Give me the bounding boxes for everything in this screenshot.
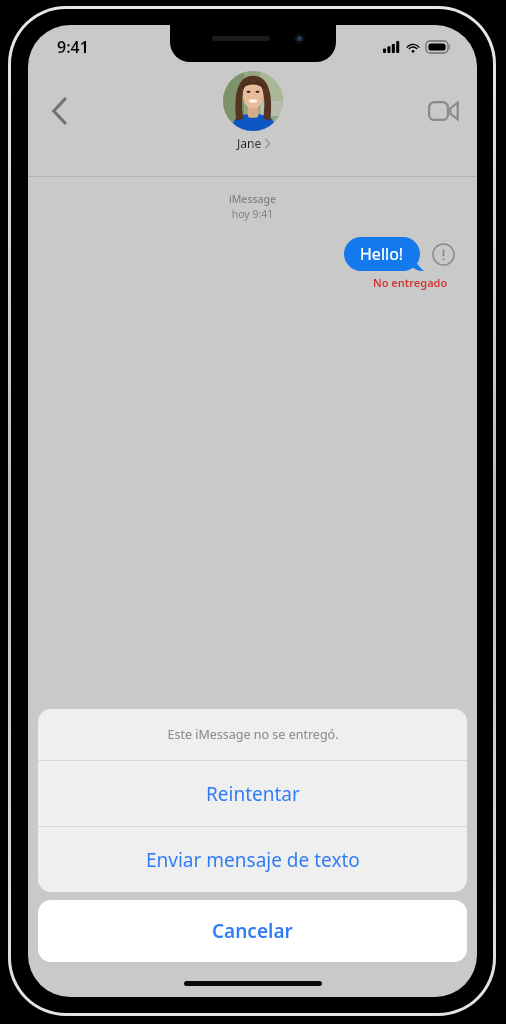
- staticText: Reintentar: [206, 781, 300, 807]
- staticText: iMessage: [28, 192, 477, 206]
- staticText: Cancelar: [212, 918, 293, 944]
- button[interactable]: Back: [36, 87, 84, 135]
- staticText: No entregado: [373, 275, 448, 290]
- button[interactable]: Jane: [223, 71, 283, 151]
- button[interactable]: Not delivered info: [430, 241, 456, 267]
- staticText: Jane: [237, 135, 262, 151]
- button[interactable]: Enviar mensaje de texto: [38, 827, 467, 892]
- button[interactable]: Hello!: [344, 237, 424, 271]
- button[interactable]: Reintentar: [38, 761, 467, 826]
- staticText: Enviar mensaje de texto: [146, 847, 360, 873]
- button[interactable]: FaceTime video call: [419, 87, 467, 135]
- staticText: hoy 9:41: [28, 207, 477, 221]
- button[interactable]: Cancelar: [38, 900, 467, 962]
- staticText: Este iMessage no se entregó.: [167, 726, 339, 743]
- staticText: 9:41: [57, 36, 89, 58]
- staticText: Hello!: [360, 243, 404, 265]
